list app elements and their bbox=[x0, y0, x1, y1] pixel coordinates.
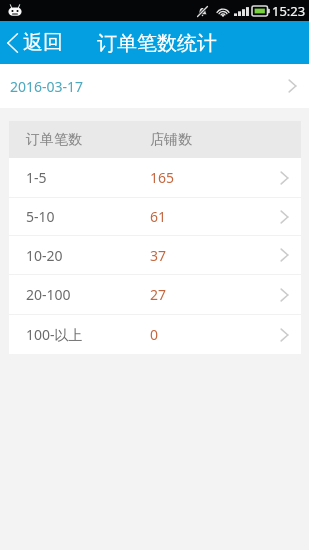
button[interactable]: 20-100 bbox=[9, 275, 301, 314]
staticText: 店铺数 bbox=[150, 131, 192, 149]
other: System notification bbox=[8, 4, 22, 16]
staticText: 27 bbox=[150, 285, 167, 304]
staticText: 100-以上 bbox=[26, 325, 83, 344]
other: Choose date bbox=[287, 78, 298, 94]
button[interactable]: 5-10 bbox=[9, 198, 301, 235]
other: Open 100-以上 details bbox=[279, 327, 290, 343]
button[interactable]: 2016-03-17 bbox=[0, 64, 309, 108]
other: Open 5-10 details bbox=[279, 209, 290, 225]
staticText: 10-20 bbox=[26, 246, 63, 265]
staticText: 5-10 bbox=[26, 207, 55, 226]
button[interactable]: 100-以上 bbox=[9, 315, 301, 354]
button[interactable]: 1-5 bbox=[9, 158, 301, 197]
staticText: 0 bbox=[150, 325, 159, 344]
staticText: 15:23 bbox=[272, 2, 306, 20]
staticText: 1-5 bbox=[26, 168, 47, 187]
staticText: 返回 bbox=[23, 30, 63, 55]
other: Open 20-100 details bbox=[279, 287, 290, 303]
staticText: 20-100 bbox=[26, 285, 71, 304]
staticText: 165 bbox=[150, 168, 175, 187]
staticText: 61 bbox=[150, 207, 167, 226]
other: Open 1-5 details bbox=[279, 170, 290, 186]
staticText: 订单笔数 bbox=[26, 131, 82, 149]
other: Open 10-20 details bbox=[279, 247, 290, 263]
staticText: 订单笔数统计 bbox=[97, 31, 217, 56]
staticText: 37 bbox=[150, 246, 167, 265]
staticText: 2016-03-17 bbox=[10, 77, 84, 96]
button[interactable]: 返回 bbox=[0, 21, 73, 64]
button[interactable]: 10-20 bbox=[9, 236, 301, 274]
